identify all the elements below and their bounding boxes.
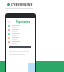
button[interactable] xyxy=(6,36,35,40)
button[interactable] xyxy=(6,24,35,28)
staticText: Top stories xyxy=(16,20,31,24)
button[interactable] xyxy=(6,28,35,32)
other: Logo xyxy=(7,3,10,6)
staticText: CYBERNEWS xyxy=(11,3,33,7)
button[interactable] xyxy=(6,40,35,44)
button[interactable] xyxy=(6,32,35,36)
button[interactable]: Logo xyxy=(7,0,64,9)
